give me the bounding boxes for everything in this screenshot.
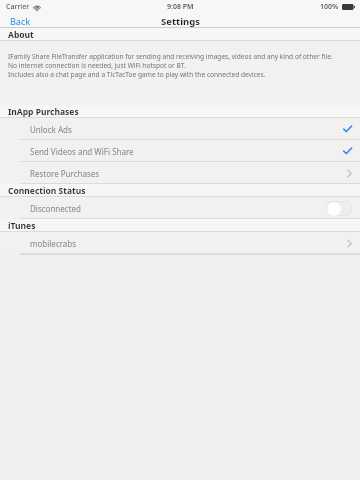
staticText: About (8, 29, 34, 41)
staticText: mobilecrabs (30, 238, 77, 249)
button[interactable]: Unlock Ads (0, 118, 360, 140)
button[interactable]: Disconnected (0, 197, 360, 219)
staticText: Restore Purchases (30, 168, 100, 179)
other: Purchased (343, 147, 352, 155)
staticText: iTunes (8, 220, 36, 232)
staticText: Unlock Ads (30, 124, 72, 135)
staticText: Includes also a chat page and a TicTacTo… (8, 70, 266, 79)
staticText: IFamily Share FileTransfer application f… (8, 52, 333, 61)
staticText: 9:08 PM (167, 2, 194, 12)
staticText: Connection Status (8, 185, 86, 197)
staticText: No internet connection is needed, just W… (8, 61, 186, 70)
staticText: Back (10, 15, 31, 27)
staticText: InApp Purchases (8, 106, 79, 118)
staticText: 100% (320, 2, 339, 12)
button[interactable]: Send Videos and WiFi Share (0, 140, 360, 162)
button[interactable]: Restore Purchases (0, 162, 360, 184)
other: Purchased (343, 125, 352, 133)
button[interactable]: Back (0, 14, 41, 28)
staticText: Send Videos and WiFi Share (30, 146, 134, 157)
staticText: Carrier (6, 2, 30, 12)
other: Open (347, 239, 352, 248)
button[interactable]: Connection toggle (326, 201, 352, 216)
other: Open (347, 169, 352, 178)
staticText: Disconnected (30, 203, 81, 214)
staticText: Settings (161, 15, 200, 28)
button[interactable]: mobilecrabs (0, 232, 360, 254)
